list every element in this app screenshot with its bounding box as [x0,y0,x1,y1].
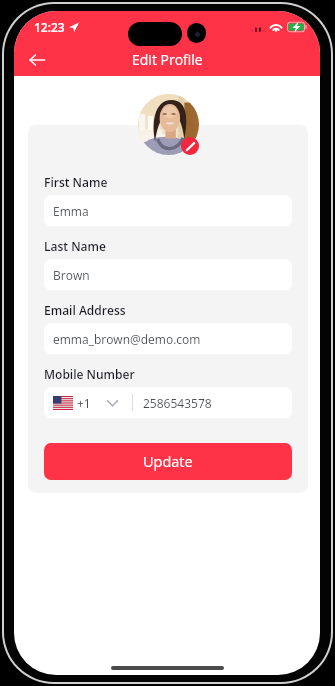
button[interactable]: Brown [44,259,292,290]
staticText: First Name [44,174,108,190]
button[interactable]: Update [44,443,292,480]
staticText: Email Address [44,302,126,318]
button[interactable]: Edit photo [181,137,199,155]
button[interactable]: Emma [44,195,292,226]
staticText: Edit Profile [132,50,203,69]
staticText: Emma [53,203,89,219]
staticText: Brown [53,267,90,283]
staticText: Last Name [44,238,106,254]
button[interactable]: +1 [44,387,292,418]
button[interactable]: emma_brown@demo.com [44,323,292,354]
button[interactable]: Back [23,46,50,73]
staticText: +1 [77,395,91,411]
staticText: Update [143,452,193,472]
staticText: emma_brown@demo.com [53,331,201,347]
staticText: 12:23 [34,19,65,35]
staticText: 2586543578 [143,395,212,411]
staticText: Mobile Number [44,366,135,382]
